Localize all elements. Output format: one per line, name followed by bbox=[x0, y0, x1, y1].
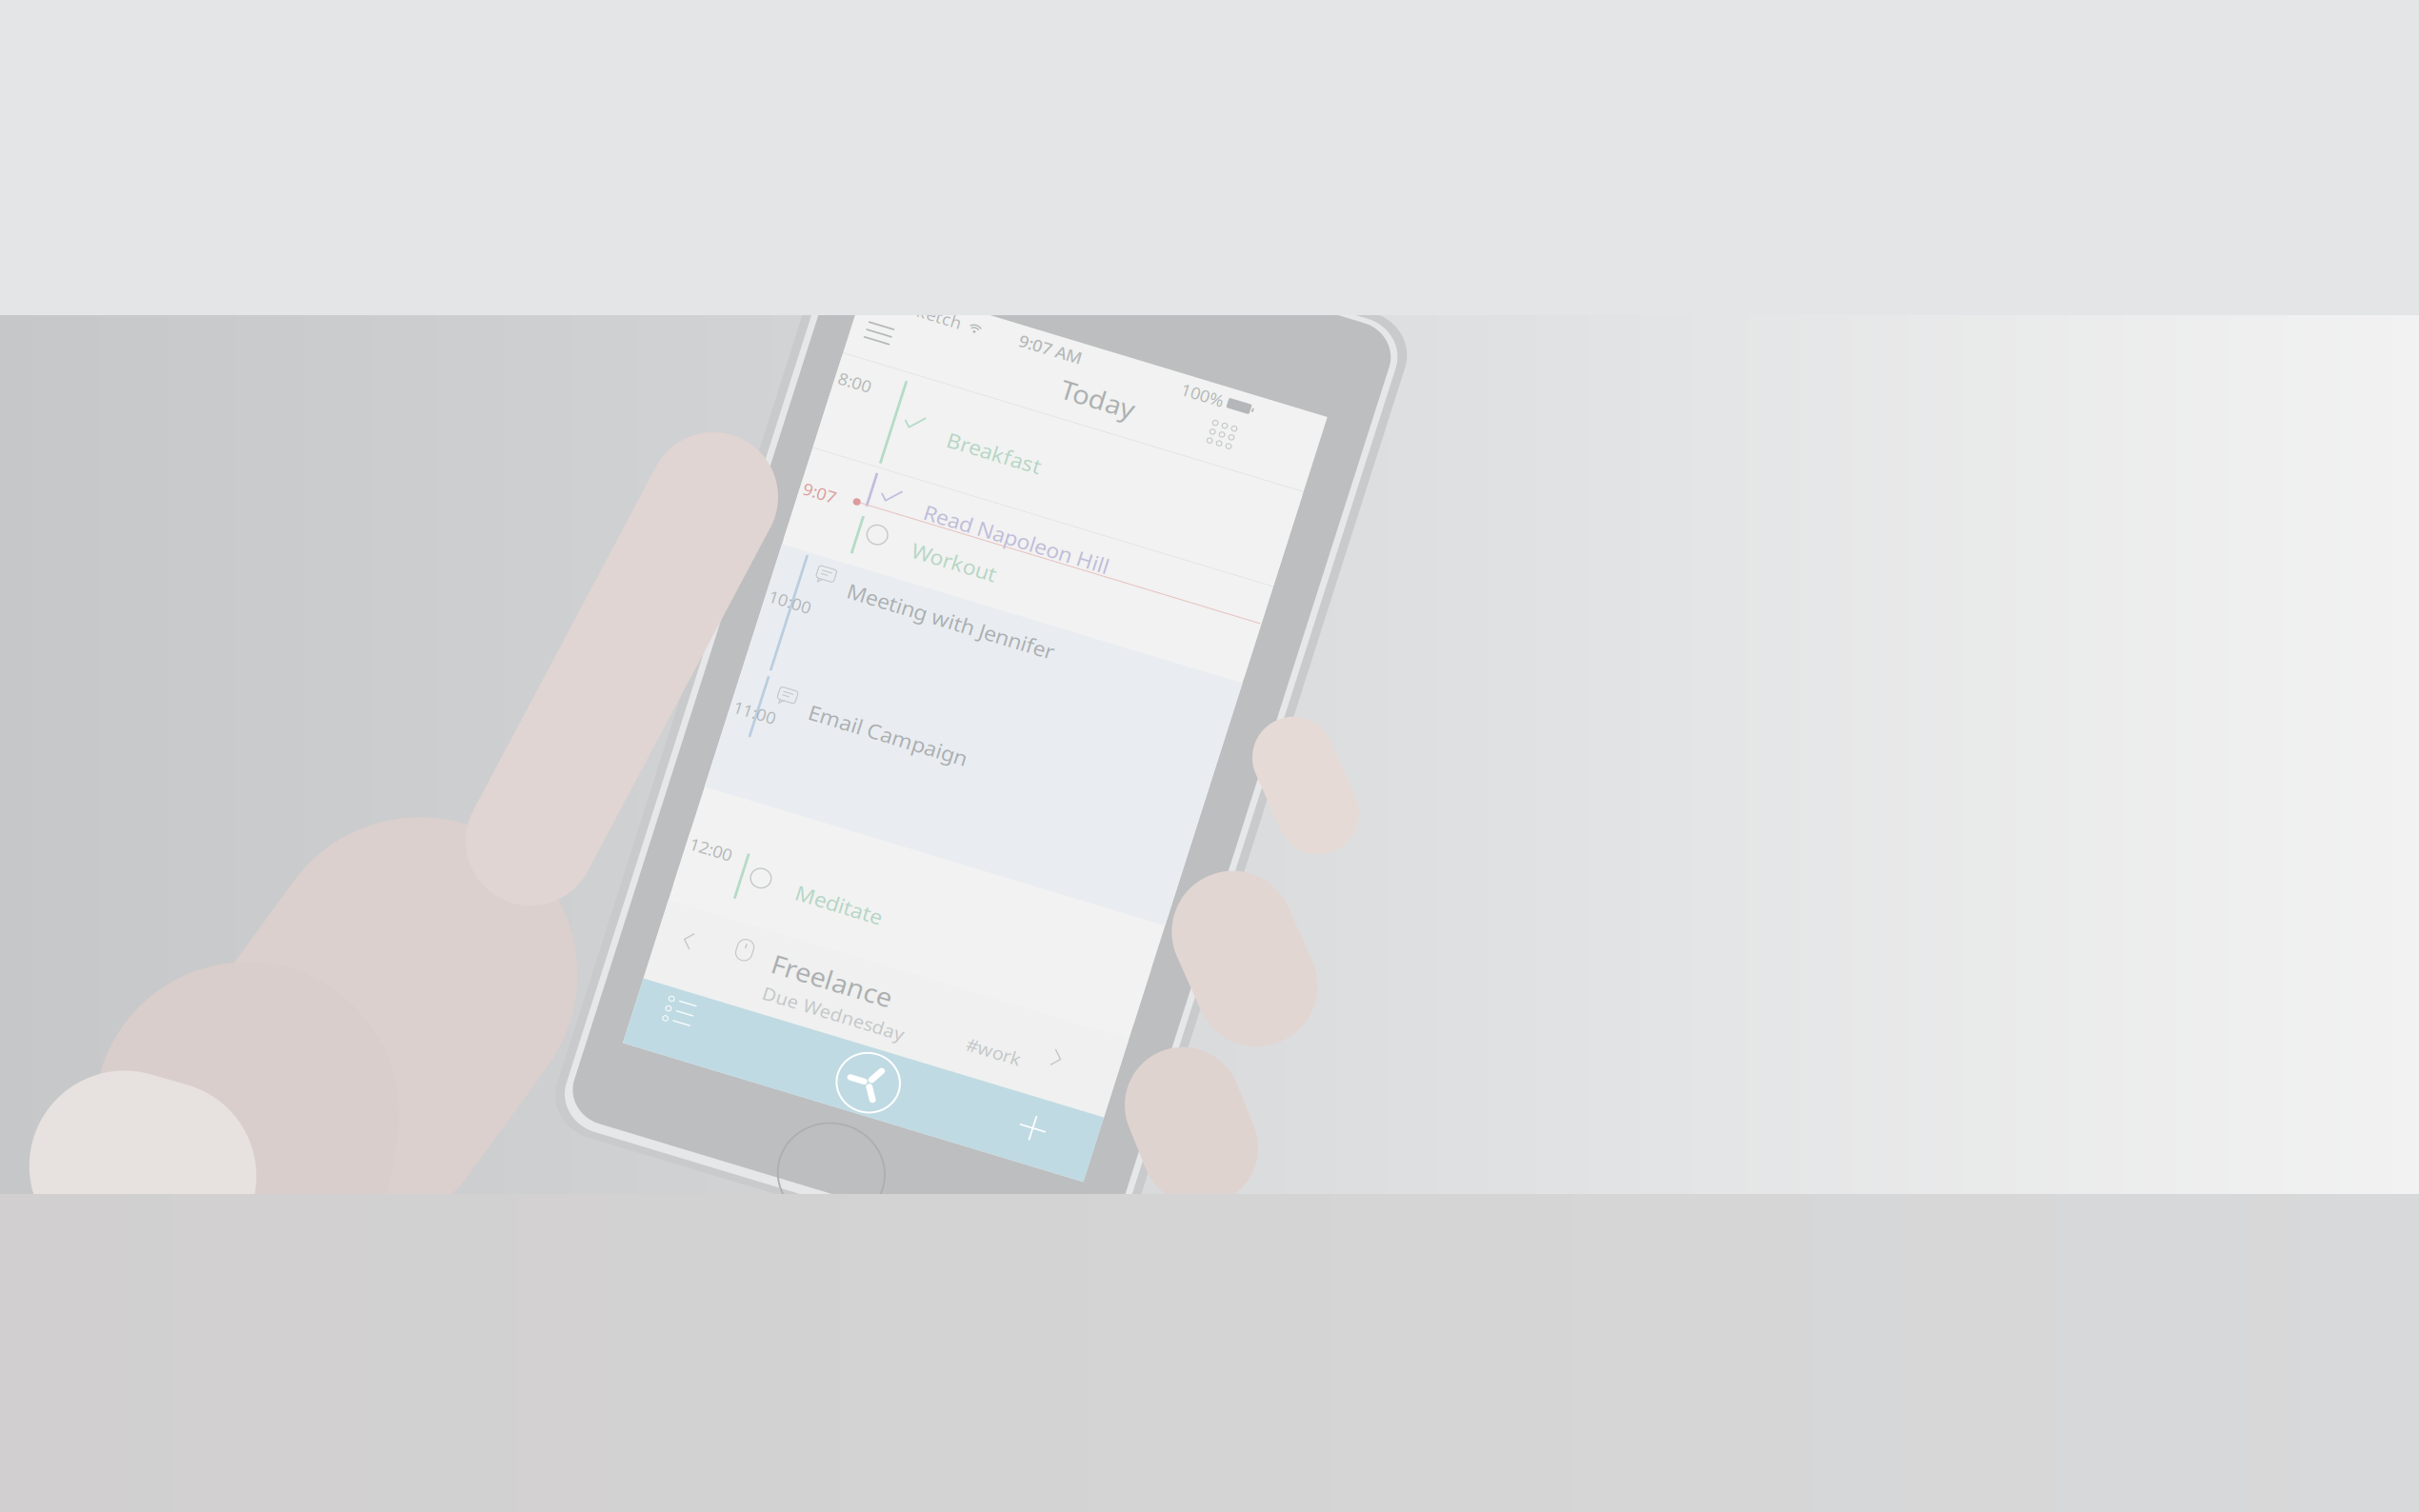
button[interactable]: Meeting with Jennifer bbox=[0, 259, 419, 377]
button[interactable]: Meditate bbox=[0, 0, 419, 591]
staticText: 10:00 bbox=[3, 298, 41, 318]
